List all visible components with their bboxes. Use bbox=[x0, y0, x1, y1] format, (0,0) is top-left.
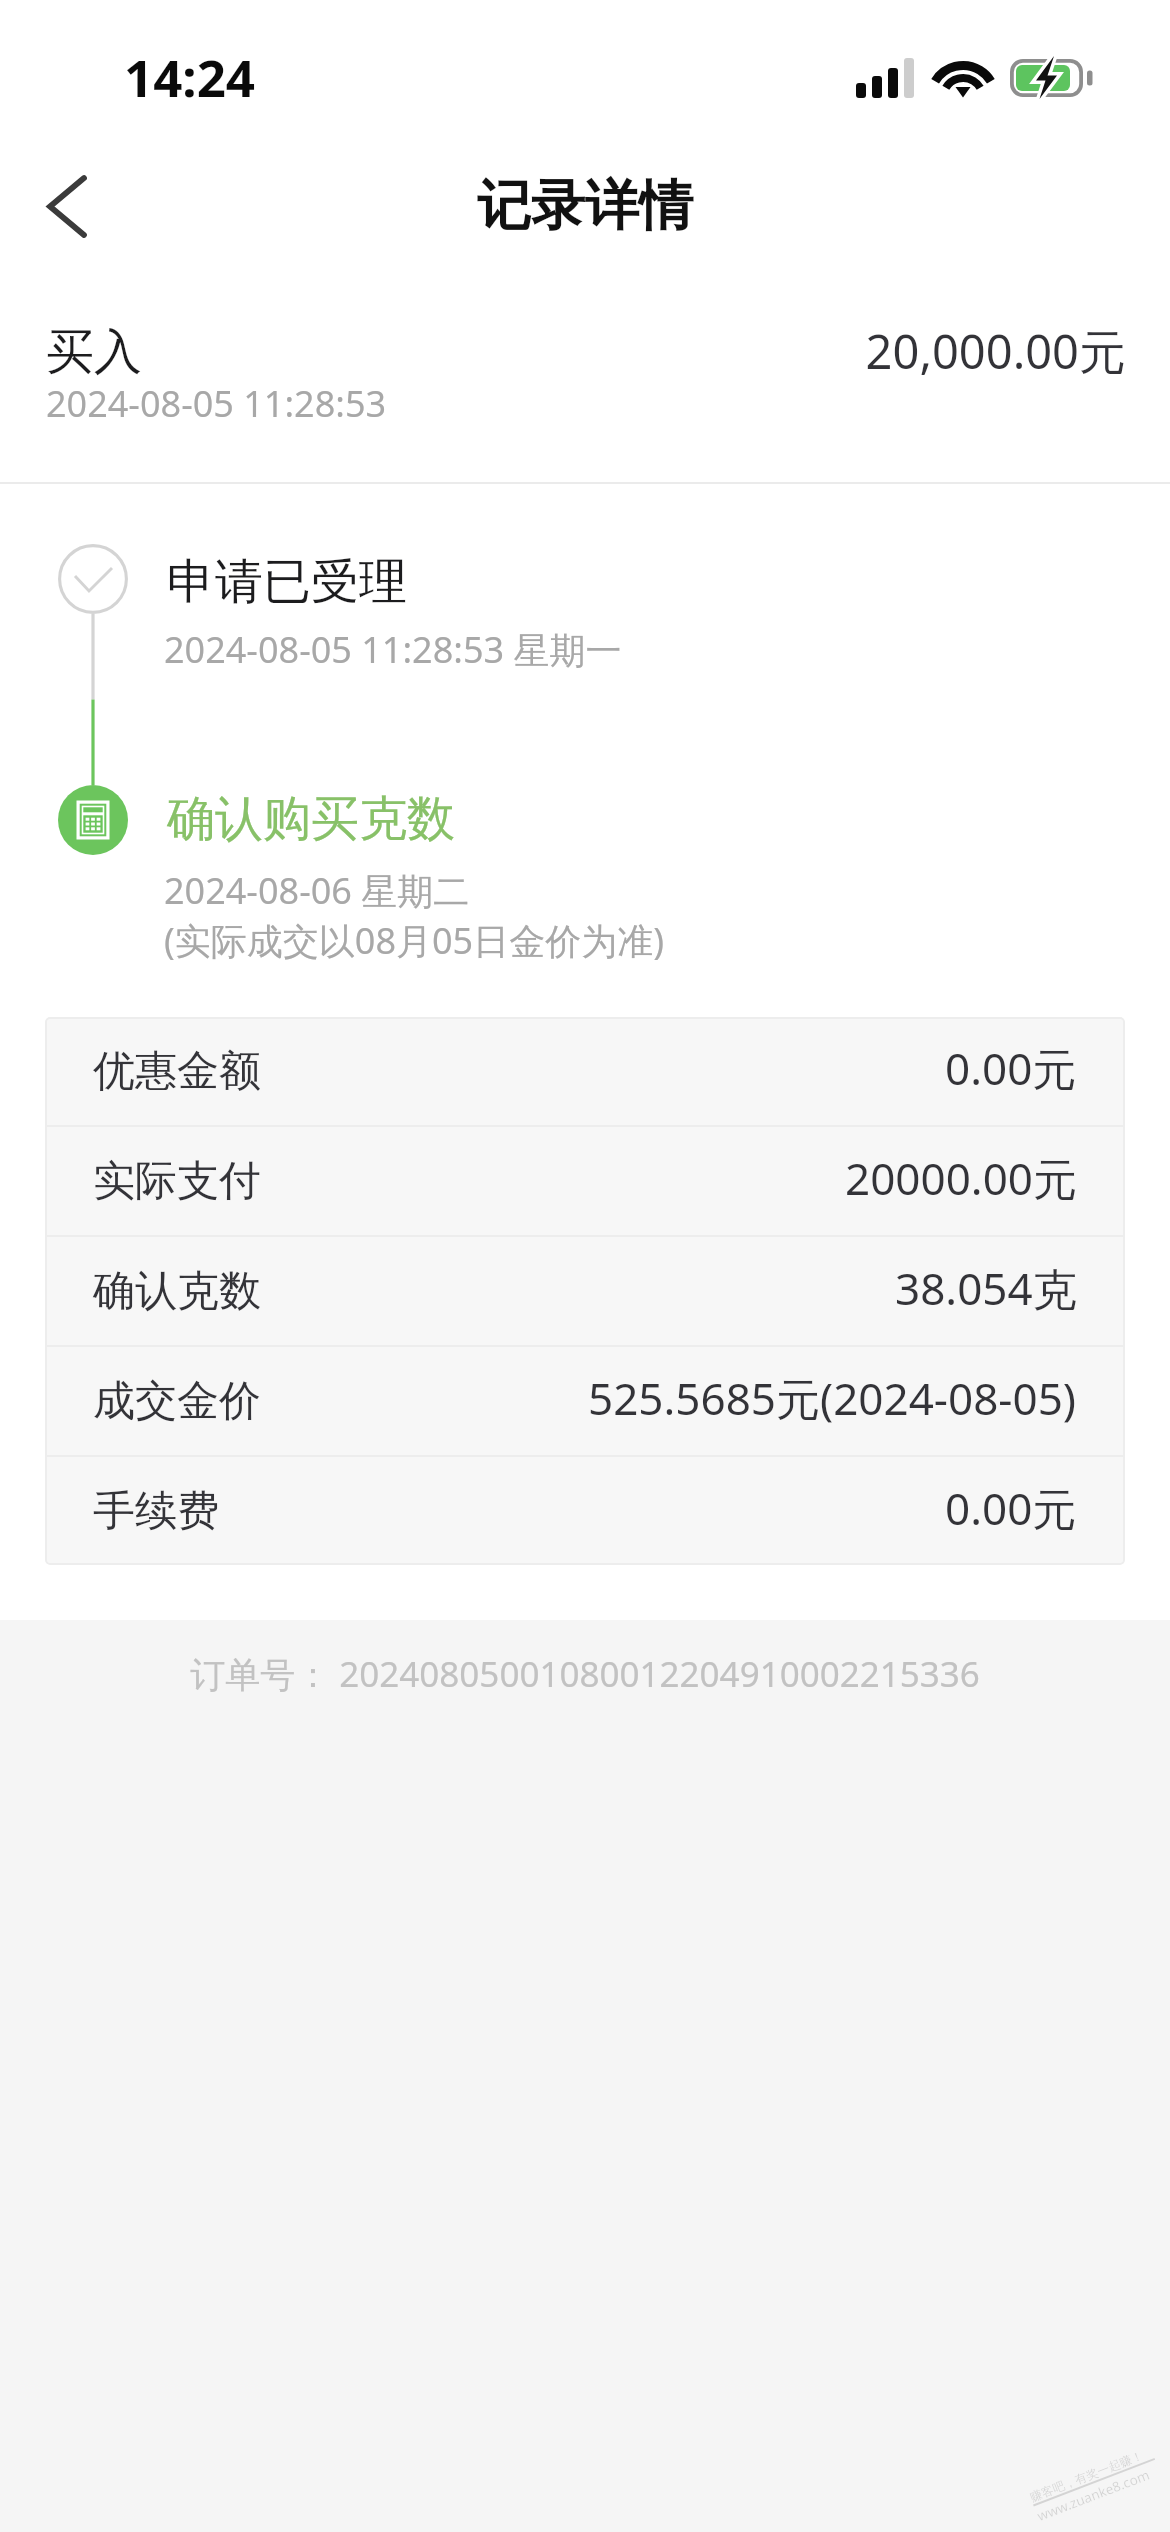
staticText: 成交金价 bbox=[93, 1375, 261, 1428]
staticText: 订单号： 20240805001080012204910002215336 bbox=[0, 1650, 1170, 1698]
staticText: 确认购买克数 bbox=[167, 789, 455, 849]
staticText: 优惠金额 bbox=[93, 1045, 261, 1098]
staticText: 买入 bbox=[46, 322, 142, 382]
staticText: 申请已受理 bbox=[167, 552, 407, 612]
staticText: 手续费 bbox=[93, 1485, 219, 1538]
button[interactable]: 手续费 bbox=[45, 1457, 1125, 1565]
button[interactable]: 确认克数 bbox=[45, 1237, 1125, 1345]
staticText: 20,000.00元 bbox=[0, 319, 1126, 383]
button[interactable]: 优惠金额 bbox=[45, 1017, 1125, 1125]
staticText: www.zuanke8.com bbox=[1034, 2466, 1152, 2525]
staticText: 20000.00元 bbox=[845, 1148, 1077, 1208]
staticText: 2024-08-06 星期二 bbox=[164, 866, 470, 915]
staticText: 38.054克 bbox=[895, 1258, 1077, 1318]
staticText: 0.00元 bbox=[945, 1038, 1077, 1098]
staticText: (实际成交以08月05日金价为准) bbox=[164, 916, 664, 965]
staticText: 赚客吧，有奖一起赚！ bbox=[1028, 2447, 1145, 2504]
button[interactable]: 实际支付 bbox=[45, 1127, 1125, 1235]
button[interactable]: Back bbox=[12, 151, 122, 261]
staticText: 2024-08-05 11:28:53 bbox=[46, 379, 387, 428]
staticText: 0.00元 bbox=[945, 1478, 1077, 1538]
staticText: 实际支付 bbox=[93, 1155, 261, 1208]
staticText: 确认克数 bbox=[93, 1265, 261, 1318]
staticText: 记录详情 bbox=[0, 172, 1170, 240]
staticText: 14:24 bbox=[124, 42, 256, 111]
staticText: 2024-08-05 11:28:53 星期一 bbox=[164, 625, 622, 674]
staticText: 525.5685元(2024-08-05) bbox=[588, 1368, 1077, 1428]
button[interactable]: 成交金价 bbox=[45, 1347, 1125, 1455]
